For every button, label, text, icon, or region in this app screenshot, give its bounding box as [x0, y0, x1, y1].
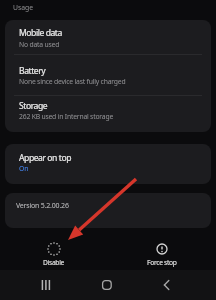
staticText: Force stop	[147, 258, 177, 267]
button[interactable]: Appear on top	[5, 144, 211, 184]
staticText: Usage	[13, 3, 34, 12]
button[interactable]	[32, 270, 60, 300]
staticText: Version 5.2.00.26	[16, 201, 69, 211]
staticText: Disable	[43, 258, 65, 267]
staticText: Mobile data	[19, 27, 62, 39]
staticText: Storage	[19, 100, 48, 112]
staticText: Appear on top	[19, 152, 71, 164]
staticText: 262 KB used in Internal storage	[19, 112, 114, 121]
staticText: None since device last fully charged	[19, 77, 126, 86]
button[interactable]	[93, 270, 121, 300]
button[interactable]	[5, 95, 211, 132]
staticText: On	[19, 164, 29, 173]
button[interactable]: Force stop	[108, 234, 216, 268]
staticText: No data used	[19, 40, 60, 49]
button[interactable]	[153, 270, 181, 300]
button[interactable]: Disable	[0, 234, 108, 268]
button[interactable]	[5, 55, 211, 94]
button[interactable]	[5, 20, 211, 54]
staticText: Battery	[19, 65, 46, 77]
